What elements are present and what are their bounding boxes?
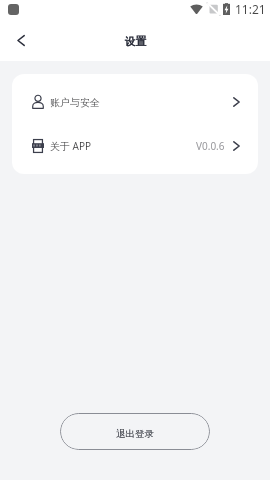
staticText: 账户与安全 — [50, 96, 100, 109]
button[interactable]: 退出登录 — [60, 413, 210, 450]
button[interactable]: Back — [0, 22, 42, 61]
staticText: 设置 — [125, 35, 146, 48]
staticText: 设置 — [125, 35, 146, 48]
staticText: V0.0.6 — [196, 139, 225, 153]
staticText: 关于 APP — [50, 139, 92, 153]
staticText: 退出登录 — [116, 428, 154, 440]
staticText: 退出登录 — [116, 428, 154, 440]
staticText: 11:21 — [235, 1, 266, 17]
button[interactable]: 账户与安全 — [12, 80, 258, 124]
button[interactable]: 关于 APP — [12, 124, 258, 168]
